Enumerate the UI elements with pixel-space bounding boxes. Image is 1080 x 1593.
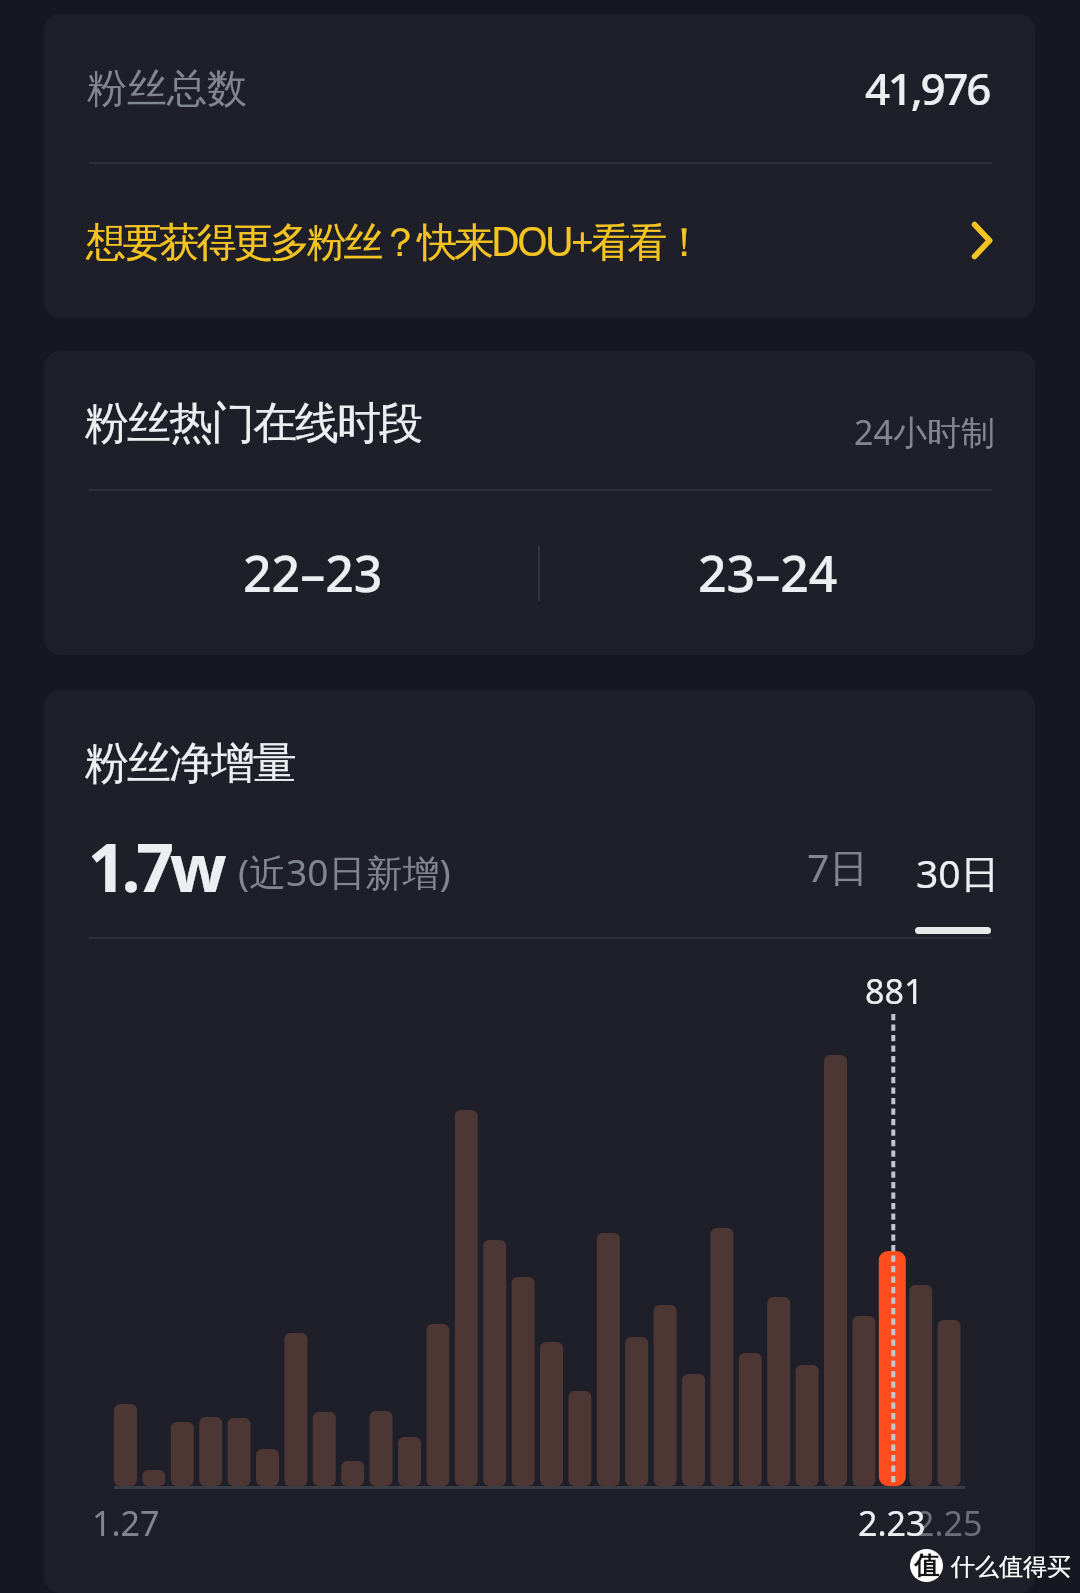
staticText: 41,976 [865,58,990,118]
staticText: 22–23 [243,539,383,607]
staticText: 粉丝热门在线时段 [86,396,422,451]
button[interactable]: 23–24 [540,491,1035,655]
staticText: 7日 [807,840,869,893]
staticText: 2.23 [858,1500,926,1546]
button[interactable]: 30日 [893,816,1013,941]
staticText: 想要获得更多粉丝？快来DOU+看看！ [86,213,701,268]
staticText: 23–24 [698,539,838,607]
staticText: 2.25 [915,1500,983,1546]
staticText: 什么值得买 [951,1552,1071,1582]
button[interactable]: Daily net fan growth bar chart [44,940,1035,1593]
button[interactable]: 想要获得更多粉丝？快来DOU+看看！ [44,163,1035,318]
staticText: 1.7w [88,821,223,911]
other: Open DOU+ [972,222,992,259]
button[interactable]: 7日 [785,816,891,916]
staticText: 1.27 [92,1500,160,1546]
staticText: 粉丝净增量 [86,736,296,791]
staticText: 30日 [916,846,1000,899]
staticText: (近30日新增) [238,846,451,897]
button[interactable]: 22–23 [44,491,538,655]
staticText: 24小时制 [854,409,995,455]
staticText: 粉丝总数 [87,63,247,113]
staticText: 881 [865,968,924,1014]
button[interactable]: 粉丝总数 [44,14,1035,162]
staticText: 值 [914,1550,939,1581]
